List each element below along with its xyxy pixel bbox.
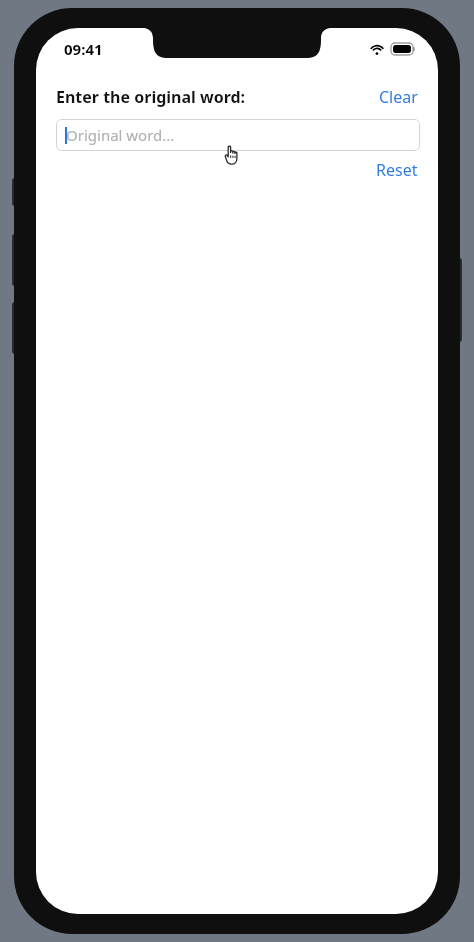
staticText: Clear — [379, 86, 418, 108]
staticText: 09:41 — [64, 39, 103, 59]
staticText: Original word... — [66, 125, 175, 145]
staticText: Reset — [376, 159, 418, 181]
button[interactable]: Clear — [377, 84, 420, 110]
button[interactable]: Reset — [374, 157, 420, 183]
staticText: Enter the original word: — [56, 86, 377, 108]
button[interactable]: Original word... — [56, 119, 420, 151]
